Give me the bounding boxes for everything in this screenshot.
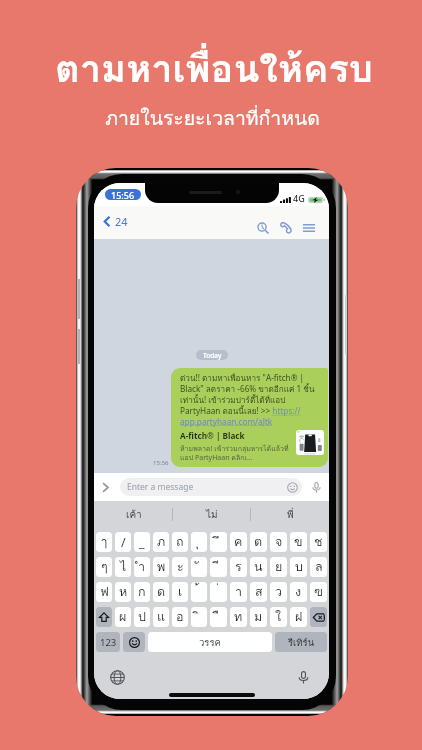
staticText: 123 [100,636,117,649]
staticText: ภ [157,532,166,552]
button[interactable]: ื [210,607,227,627]
button[interactable]: ร [230,557,247,577]
button[interactable]: ย [270,557,287,577]
button[interactable]: ก [134,582,150,602]
button[interactable]: ล [310,557,327,577]
button[interactable]: ไ [115,557,131,577]
staticText: ม [254,607,263,627]
button[interactable]: ฝ [290,607,307,627]
staticText: อ [176,607,184,627]
staticText: ว [275,582,283,602]
button[interactable]: Change keyboard [108,668,127,687]
button[interactable]: ถ [172,532,188,552]
button[interactable]: Call [278,220,294,236]
button[interactable]: พ [153,557,169,577]
staticText: ภายในระยะเวลาที่กำหนด [105,103,320,134]
button[interactable]: ำ [134,557,150,577]
button[interactable]: ุ [191,532,207,552]
staticText: พ [157,557,166,577]
button[interactable]: 123 [96,632,120,652]
staticText: 15:56 [111,189,135,200]
staticText: 15:56 [153,459,169,467]
staticText: ย [275,557,283,577]
button[interactable]: Enter a message [120,478,302,496]
button[interactable]: บ [290,557,307,577]
button[interactable]: เค้า [94,501,173,528]
button[interactable]: เ [172,582,188,602]
button[interactable]: อ [172,607,188,627]
button[interactable]: วรรค [148,632,272,652]
button[interactable]: ช [310,532,327,552]
staticText: ฝ [295,607,303,627]
button[interactable]: Dictation [294,668,313,687]
staticText: Today [203,351,222,360]
button[interactable]: Menu [301,220,317,236]
staticText: ห [119,582,128,602]
button[interactable]: ใ [270,607,287,627]
button[interactable]: ป [134,607,150,627]
staticText: บ [295,557,303,577]
button[interactable]: ท [230,607,247,627]
button[interactable]: Search [255,220,271,236]
button[interactable]: ั [191,557,207,577]
button[interactable]: ข [290,532,307,552]
button[interactable]: แ [153,607,169,627]
button[interactable]: Emoji [123,632,145,652]
button[interactable]: ต [250,532,267,552]
button[interactable]: ๅ [96,532,112,552]
button[interactable]: ่ [210,582,227,602]
staticText: ตามหาเพื่อนให้ครบ [55,38,373,98]
button[interactable]: Emoji [284,479,300,495]
staticText: ใ [275,607,282,627]
staticText: ค [234,532,243,552]
button[interactable]: า [230,582,247,602]
button[interactable]: ี [210,557,227,577]
staticText: ะ [177,557,184,577]
button[interactable]: น [250,557,267,577]
button[interactable]: ง [290,582,307,602]
button[interactable]: More options [97,479,113,495]
staticText: ก [138,582,146,602]
button[interactable]: 24 [102,211,130,232]
button[interactable]: ฟ [96,582,112,602]
button[interactable]: ผ [115,607,131,627]
button[interactable]: Voice message [308,479,324,495]
staticText: น [254,557,263,577]
button[interactable]: Backspace [310,607,327,627]
button[interactable]: รีเทิร์น [275,632,327,652]
button[interactable]: ะ [172,557,188,577]
staticText: ฃ [314,582,323,602]
button[interactable]: พี่ [251,501,329,528]
button[interactable]: ว [270,582,287,602]
staticText: รีเทิร์น [288,635,315,650]
button[interactable]: ภ [153,532,169,552]
staticText: ฟ [100,582,109,602]
staticText: ำ [138,557,146,577]
button[interactable]: ด [153,582,169,602]
button[interactable]: ส [250,582,267,602]
staticText: ร [235,557,242,577]
staticText: ป [138,607,146,627]
staticText: วรรค [199,635,221,650]
staticText: ห้ามพลาด! เข้าร่วมกลุ่มหารได้แล้วที่แอป … [180,443,293,463]
button[interactable]: ิ [191,607,207,627]
button[interactable]: ้ [191,582,207,602]
staticText: แ [157,607,166,627]
button[interactable]: ด่วน!! ตามหาเพื่อนหาร "A-fitch® | Black"… [171,368,328,467]
staticText: จ [275,532,283,552]
button[interactable]: / [115,532,131,552]
button[interactable]: ไม่ [173,501,251,528]
button[interactable]: ม [250,607,267,627]
button[interactable]: ๆ [96,557,112,577]
button[interactable]: จ [270,532,287,552]
button[interactable]: _ [134,532,150,552]
button[interactable]: ห [115,582,131,602]
button[interactable]: ึ [210,532,227,552]
staticText: ง [295,582,302,602]
button[interactable]: ค [230,532,247,552]
staticText: พี่ [287,507,294,523]
staticText: 4G [293,192,305,204]
button[interactable]: Shift [96,607,112,627]
staticText: เค้า [126,507,142,523]
button[interactable]: ฃ [310,582,327,602]
